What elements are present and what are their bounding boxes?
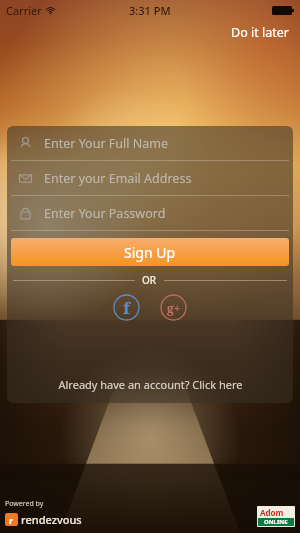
button[interactable]: Already have an account? Click here bbox=[7, 372, 293, 397]
staticText: Already have an account? Click here bbox=[58, 377, 243, 392]
button[interactable]: Sign Up bbox=[11, 238, 289, 266]
staticText: r bbox=[9, 514, 14, 526]
button[interactable]: Sign up with Google Plus bbox=[160, 294, 187, 321]
staticText: Carrier bbox=[6, 3, 42, 18]
button[interactable]: Enter Your Password bbox=[7, 196, 293, 231]
button[interactable]: Do it later bbox=[228, 21, 292, 44]
button[interactable]: Enter Your Full Name bbox=[7, 126, 293, 161]
staticText: Powered by bbox=[5, 499, 44, 509]
staticText: g+ bbox=[167, 300, 181, 316]
staticText: Do it later bbox=[231, 24, 289, 41]
staticText: OR bbox=[142, 273, 157, 287]
staticText: Sign Up bbox=[124, 243, 176, 262]
staticText: 3:31 PM bbox=[129, 3, 171, 18]
staticText: ONLINE bbox=[264, 518, 288, 526]
button[interactable]: Sign up with Facebook bbox=[113, 294, 140, 321]
staticText: Adom bbox=[260, 507, 284, 518]
staticText: f bbox=[123, 296, 130, 319]
staticText: Enter your Email Address bbox=[44, 170, 192, 187]
staticText: Enter Your Full Name bbox=[44, 135, 168, 152]
button[interactable]: Enter your Email Address bbox=[7, 161, 293, 196]
staticText: Enter Your Password bbox=[44, 205, 166, 222]
staticText: rendezvous bbox=[21, 512, 82, 527]
